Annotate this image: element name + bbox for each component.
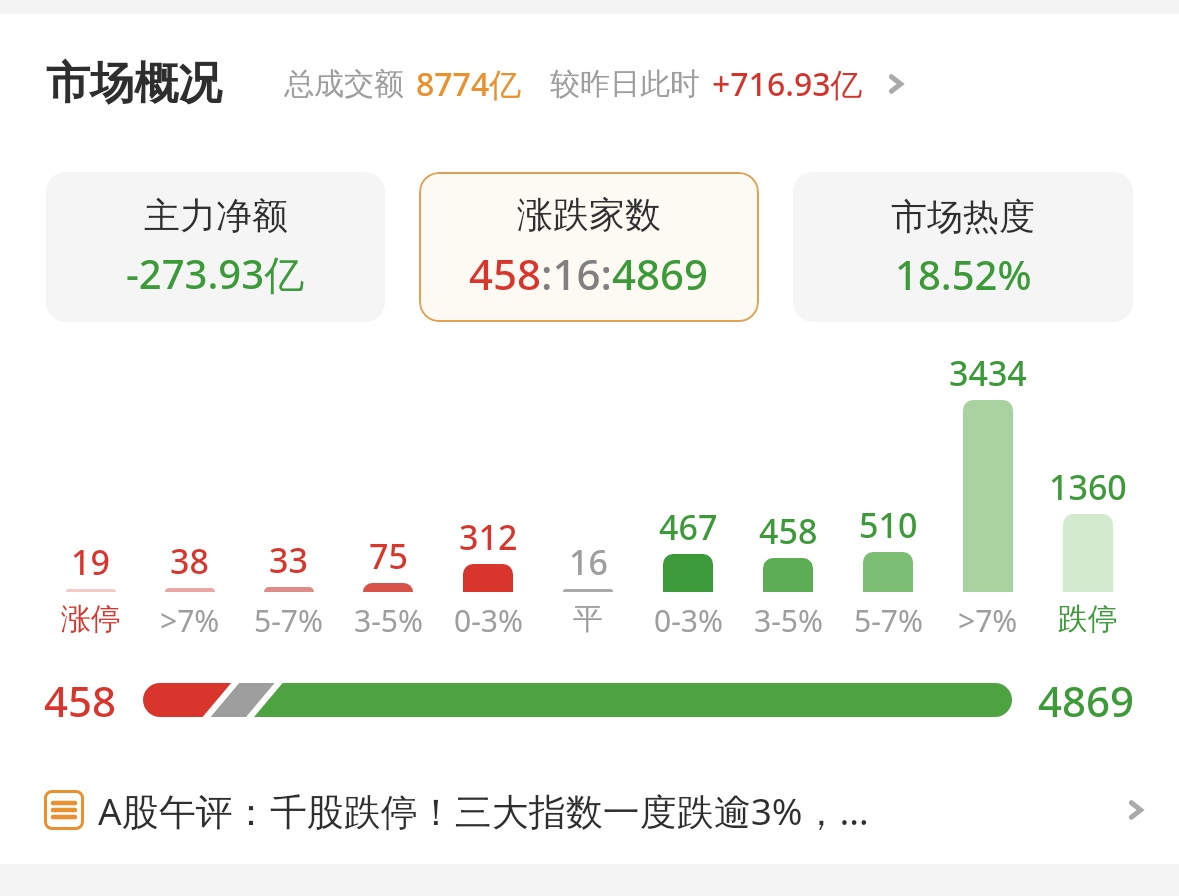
staticText: 3-5% [354, 600, 423, 641]
staticText: +716.93亿 [712, 62, 863, 106]
staticText: >7% [958, 600, 1018, 641]
staticText: A股午评：千股跌停！三大指数一度跌逾3%，… [98, 785, 869, 836]
staticText: 0-3% [654, 600, 723, 641]
staticText: 3434 [949, 350, 1027, 396]
staticText: -273.93亿 [126, 246, 305, 301]
staticText: 312 [459, 514, 518, 560]
staticText: 总成交额 [284, 65, 404, 103]
button[interactable]: 主力净额 [46, 172, 385, 322]
staticText: 较昨日此时 [550, 65, 700, 103]
staticText: 涨停 [61, 600, 121, 638]
staticText: 0-3% [454, 600, 523, 641]
staticText: 16 [569, 539, 608, 585]
staticText: 跌停 [1058, 600, 1118, 638]
staticText: >7% [160, 600, 220, 641]
staticText: 458 [44, 672, 117, 728]
staticText: 平 [573, 600, 603, 638]
staticText: 467 [659, 504, 718, 550]
staticText: 5-7% [254, 600, 323, 641]
staticText: 19 [71, 539, 110, 585]
staticText: 1360 [1049, 464, 1127, 510]
staticText: 5-7% [854, 600, 923, 641]
button[interactable]: A股午评：千股跌停！三大指数一度跌逾3%，… [44, 778, 1149, 842]
staticText: 458:16:4869 [469, 245, 709, 302]
staticText: 主力净额 [144, 193, 288, 238]
staticText: 涨跌家数 [517, 192, 661, 237]
staticText: 4869 [1038, 672, 1135, 728]
staticText: 市场概况 [46, 56, 222, 111]
button[interactable]: 市场热度 [793, 172, 1133, 322]
staticText: 510 [859, 502, 918, 548]
staticText: 18.52% [895, 247, 1032, 301]
button[interactable]: 总成交额 [284, 62, 909, 106]
button[interactable]: 涨跌家数 [419, 172, 759, 322]
staticText: 458 [759, 508, 818, 554]
staticText: 75 [369, 533, 408, 579]
staticText: 市场热度 [891, 194, 1035, 239]
staticText: 33 [269, 537, 308, 583]
staticText: 8774亿 [416, 62, 522, 106]
staticText: 3-5% [754, 600, 823, 641]
staticText: 38 [170, 538, 209, 584]
